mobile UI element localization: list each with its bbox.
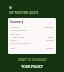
staticText: £24.50 — [46, 47, 54, 50]
staticText: Total — [10, 47, 16, 50]
staticText: 1 March 2026 — [10, 36, 25, 39]
staticText: Summary — [10, 20, 24, 24]
staticText: Two named drivers — [10, 42, 31, 45]
staticText: YOUR POLICY — [21, 65, 43, 69]
staticText: Coverage — [10, 26, 21, 29]
button[interactable]: Coverage — [10, 26, 54, 29]
button[interactable]: 1 March 2026 — [10, 36, 54, 39]
staticText: Standard — [44, 26, 54, 29]
button[interactable]: Start date — [10, 33, 54, 36]
other: Logo — [9, 6, 12, 9]
staticText: GET YOUR FREE QUOTE — [9, 11, 39, 15]
button[interactable]: Excess — [10, 39, 54, 42]
staticText: Start date — [10, 33, 21, 36]
button[interactable]: YOUR POLICY — [19, 64, 45, 70]
staticText: Excess — [10, 39, 18, 42]
button[interactable]: Total — [10, 47, 54, 50]
staticText: Comprehensive — [10, 29, 27, 32]
staticText: £24.50 — [46, 39, 54, 42]
staticText: £250 — [48, 36, 54, 39]
staticText: READY TO GO AHEAD? — [18, 58, 47, 62]
